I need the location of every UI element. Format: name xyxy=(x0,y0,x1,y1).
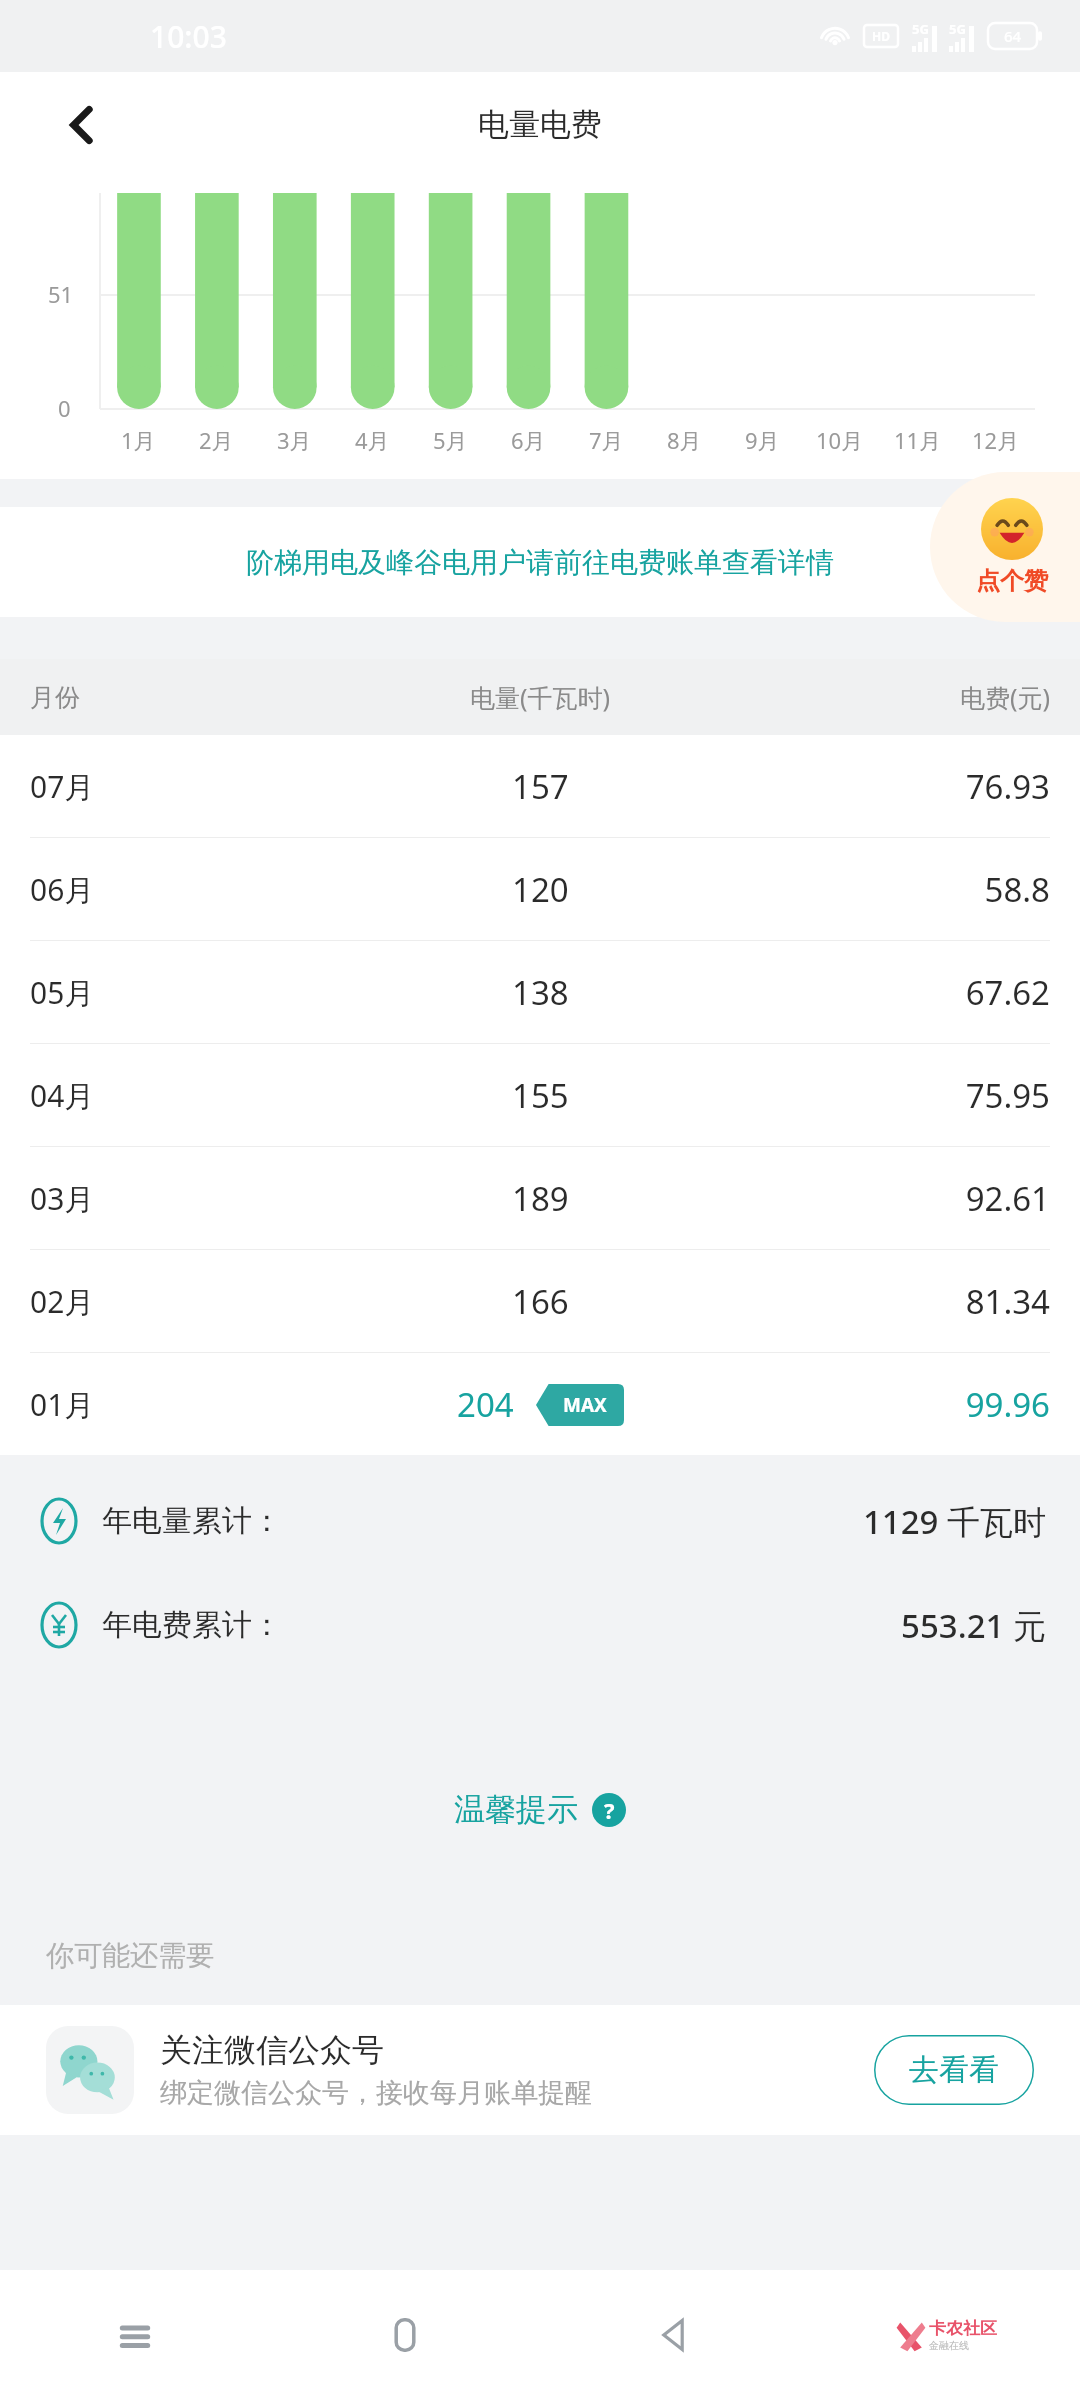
staticText: 点个赞 xyxy=(976,566,1048,596)
staticText: 10:03 xyxy=(150,16,227,57)
staticText: 120 xyxy=(512,867,569,912)
staticText: 年电量累计： xyxy=(102,1502,862,1540)
button[interactable]: 点个赞 xyxy=(930,472,1080,622)
button[interactable]: 02月 xyxy=(0,1250,1080,1352)
staticText: 204 xyxy=(457,1382,514,1427)
staticText: 6月 xyxy=(511,425,546,455)
staticText: ? xyxy=(604,1795,615,1825)
staticText: 02月 xyxy=(30,1281,339,1322)
staticText: 166 xyxy=(512,1279,569,1324)
button[interactable]: Back xyxy=(540,2270,810,2400)
staticText: 5G xyxy=(912,20,929,38)
staticText: 3月 xyxy=(277,425,312,455)
staticText: 电量(千瓦时) xyxy=(339,680,741,714)
button[interactable]: 年电费累计： xyxy=(34,1573,1046,1677)
staticText: 51 xyxy=(48,279,74,309)
staticText: 电量电费 xyxy=(478,105,602,144)
staticText: 4月 xyxy=(355,425,390,455)
staticText: 12月 xyxy=(972,425,1020,455)
staticText: MAX xyxy=(563,1392,607,1418)
staticText: 553.21 元 xyxy=(901,1603,1046,1648)
button[interactable]: 03月 xyxy=(0,1147,1080,1249)
staticText: 07月 xyxy=(30,766,339,807)
staticText: 去看看 xyxy=(909,2051,999,2089)
staticText: 关注微信公众号 xyxy=(160,2030,384,2070)
staticText: HD xyxy=(872,28,890,44)
staticText: 189 xyxy=(512,1176,569,1221)
staticText: 5G xyxy=(949,20,966,38)
button[interactable]: Home xyxy=(270,2270,540,2400)
staticText: 99.96 xyxy=(741,1382,1050,1427)
staticText: 10月 xyxy=(816,425,864,455)
staticText: 5月 xyxy=(433,425,468,455)
staticText: 67.62 xyxy=(741,970,1050,1015)
staticText: 1月 xyxy=(121,425,156,455)
staticText: 81.34 xyxy=(741,1279,1050,1324)
button[interactable]: 07月 xyxy=(0,735,1080,837)
staticText: 8月 xyxy=(667,425,702,455)
staticText: 1129 千瓦时 xyxy=(862,1499,1046,1544)
staticText: 04月 xyxy=(30,1075,339,1116)
staticText: 155 xyxy=(512,1073,569,1118)
staticText: 06月 xyxy=(30,869,339,910)
staticText: 电费(元) xyxy=(741,680,1050,714)
button[interactable]: Back xyxy=(52,95,112,155)
staticText: 58.8 xyxy=(741,867,1050,912)
staticText: 75.95 xyxy=(741,1073,1050,1118)
staticText: 年电费累计： xyxy=(102,1606,901,1644)
staticText: 你可能还需要 xyxy=(46,1938,214,1973)
staticText: 157 xyxy=(512,764,569,809)
button[interactable]: 年电量累计： xyxy=(34,1469,1046,1573)
staticText: 11月 xyxy=(894,425,942,455)
staticText: 卡农社区 xyxy=(929,2318,997,2339)
staticText: 2月 xyxy=(199,425,234,455)
button[interactable]: 05月 xyxy=(0,941,1080,1043)
button[interactable]: 阶梯用电及峰谷电用户请前往电费账单查看详情 xyxy=(0,507,1080,617)
staticText: 阶梯用电及峰谷电用户请前往电费账单查看详情 xyxy=(246,545,834,580)
button[interactable]: 关注微信公众号 xyxy=(0,2005,1080,2135)
staticText: 64 xyxy=(1004,26,1022,46)
staticText: 76.93 xyxy=(741,764,1050,809)
staticText: 03月 xyxy=(30,1178,339,1219)
staticText: 月份 xyxy=(30,682,339,713)
button[interactable]: Recents xyxy=(0,2270,270,2400)
staticText: 05月 xyxy=(30,972,339,1013)
staticText: 01月 xyxy=(30,1384,339,1425)
button[interactable]: 04月 xyxy=(0,1044,1080,1146)
staticText: 7月 xyxy=(589,425,624,455)
button[interactable]: 温馨提示 xyxy=(454,1790,626,1829)
staticText: 温馨提示 xyxy=(454,1790,578,1829)
button[interactable]: 去看看 xyxy=(874,2035,1034,2105)
staticText: 9月 xyxy=(745,425,780,455)
button[interactable]: 06月 xyxy=(0,838,1080,940)
staticText: 金融在线 xyxy=(929,2339,969,2352)
button[interactable]: 01月 xyxy=(0,1353,1080,1455)
staticText: 0 xyxy=(58,393,71,423)
staticText: 138 xyxy=(512,970,569,1015)
staticText: 92.61 xyxy=(741,1176,1050,1221)
staticText: 绑定微信公众号，接收每月账单提醒 xyxy=(160,2076,592,2110)
